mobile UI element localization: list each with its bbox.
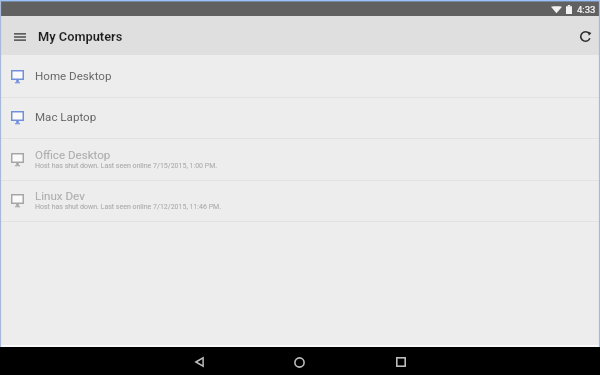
staticText: Host has shut down. Last seen online 7/1… <box>35 203 222 211</box>
button[interactable]: Refresh <box>565 17 600 56</box>
staticText: 4:33 <box>577 4 596 15</box>
button[interactable]: Home Desktop <box>0 55 600 96</box>
staticText: Mac Laptop <box>35 110 97 124</box>
button[interactable]: Linux Dev <box>0 179 600 220</box>
button[interactable]: Home <box>275 348 323 375</box>
button[interactable]: Back <box>175 348 223 375</box>
button[interactable]: Office Desktop <box>0 138 600 179</box>
staticText: My Computers <box>38 29 123 44</box>
button[interactable]: Mac Laptop <box>0 96 600 137</box>
staticText: Office Desktop <box>35 148 111 162</box>
button[interactable]: Recent apps <box>377 348 425 375</box>
button[interactable]: Open navigation drawer <box>0 16 40 55</box>
staticText: Host has shut down. Last seen online 7/1… <box>35 162 218 170</box>
staticText: Home Desktop <box>35 69 112 83</box>
staticText: Linux Dev <box>35 189 85 203</box>
